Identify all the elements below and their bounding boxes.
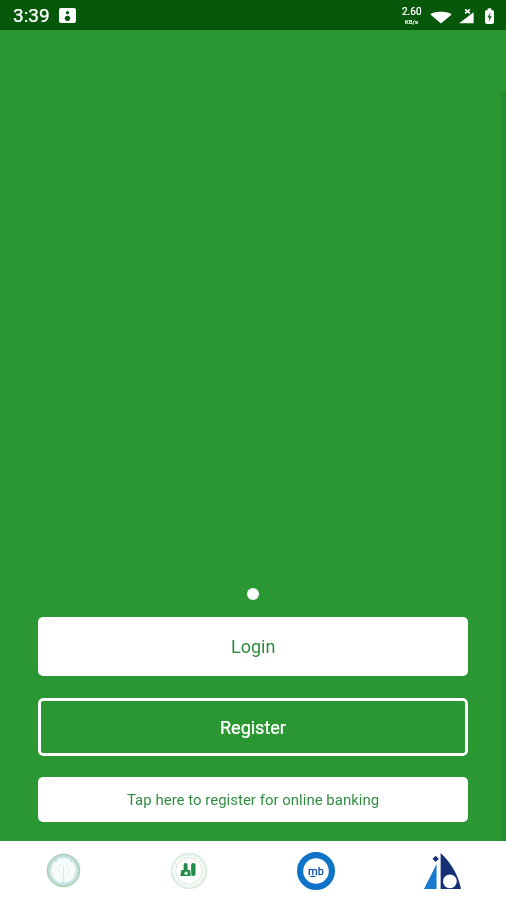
button[interactable]: Internet banking	[379, 841, 506, 900]
staticText: 3:39	[13, 4, 50, 26]
staticText: KB/s	[405, 18, 419, 25]
button[interactable]: Bank seal	[0, 841, 126, 900]
button[interactable]: Mobile banking	[252, 841, 379, 900]
button[interactable]: Login	[38, 617, 468, 676]
button[interactable]: Register	[38, 698, 468, 756]
staticText: Register	[220, 717, 286, 738]
staticText: 2.60	[402, 6, 422, 18]
button[interactable]: Tap here to register for online banking	[38, 777, 468, 822]
button[interactable]: Bank emblem	[126, 841, 252, 900]
staticText: Login	[231, 636, 276, 657]
staticText: m̲b	[308, 865, 324, 878]
staticText: Tap here to register for online banking	[127, 791, 380, 809]
